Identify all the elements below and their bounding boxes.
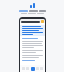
button[interactable]: Home bbox=[31, 67, 35, 71]
button[interactable]: Address bar bbox=[21, 21, 40, 23]
button[interactable]: Logo bbox=[30, 3, 35, 8]
button[interactable]: Notification bbox=[41, 20, 44, 23]
